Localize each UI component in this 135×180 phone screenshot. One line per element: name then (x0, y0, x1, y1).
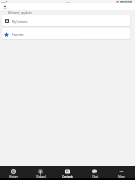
staticText: Favorites (12, 33, 24, 37)
button[interactable]: Dialpad (27, 166, 54, 178)
button[interactable]: Contacts (54, 166, 81, 178)
button[interactable]: Favorites (2, 28, 130, 39)
staticText: Welcome, appkeen (8, 11, 32, 15)
button[interactable]: History (0, 166, 27, 178)
staticText: Pixel (1, 1, 7, 4)
button[interactable]: More (108, 166, 135, 178)
staticText: Dialpad (36, 175, 46, 178)
staticText: 1:38 (65, 1, 70, 4)
staticText: More (118, 175, 125, 178)
button[interactable]: Chat (81, 166, 108, 178)
button[interactable]: My Contacts (2, 15, 130, 26)
staticText: My Contacts (12, 20, 28, 24)
staticText: Chat (92, 175, 98, 178)
staticText: Contacts (62, 175, 73, 178)
staticText: History (9, 175, 18, 178)
